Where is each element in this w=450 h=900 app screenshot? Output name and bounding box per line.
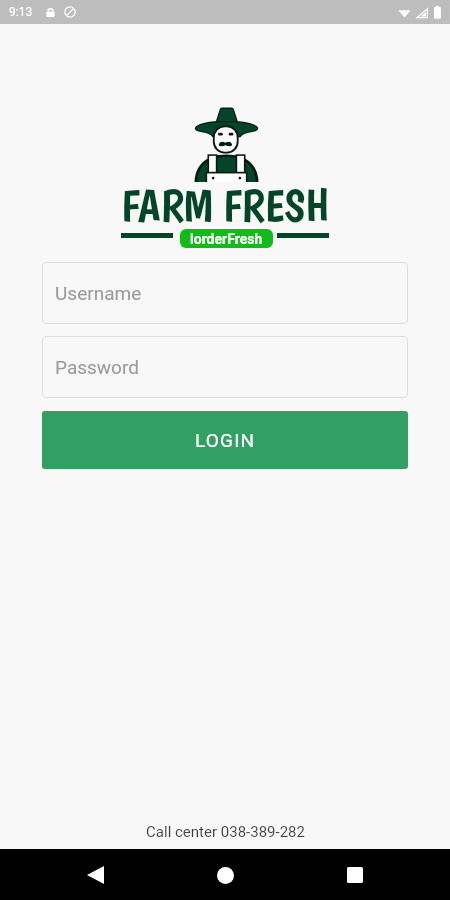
staticText: LOGIN — [195, 429, 256, 451]
button[interactable]: Recent apps — [331, 851, 379, 899]
staticText: FARM FRESH — [121, 180, 329, 232]
staticText: Username — [55, 282, 142, 304]
staticText: 9:13 — [9, 5, 33, 19]
button[interactable]: Username — [42, 262, 408, 324]
button[interactable]: Back — [71, 851, 119, 899]
button[interactable]: Password — [42, 336, 408, 398]
staticText: Password — [55, 356, 139, 378]
staticText: Call center 038-389-282 — [146, 823, 305, 841]
button[interactable]: Home — [201, 851, 249, 899]
staticText: lorderFresh — [190, 231, 263, 247]
button[interactable]: LOGIN — [42, 411, 408, 469]
